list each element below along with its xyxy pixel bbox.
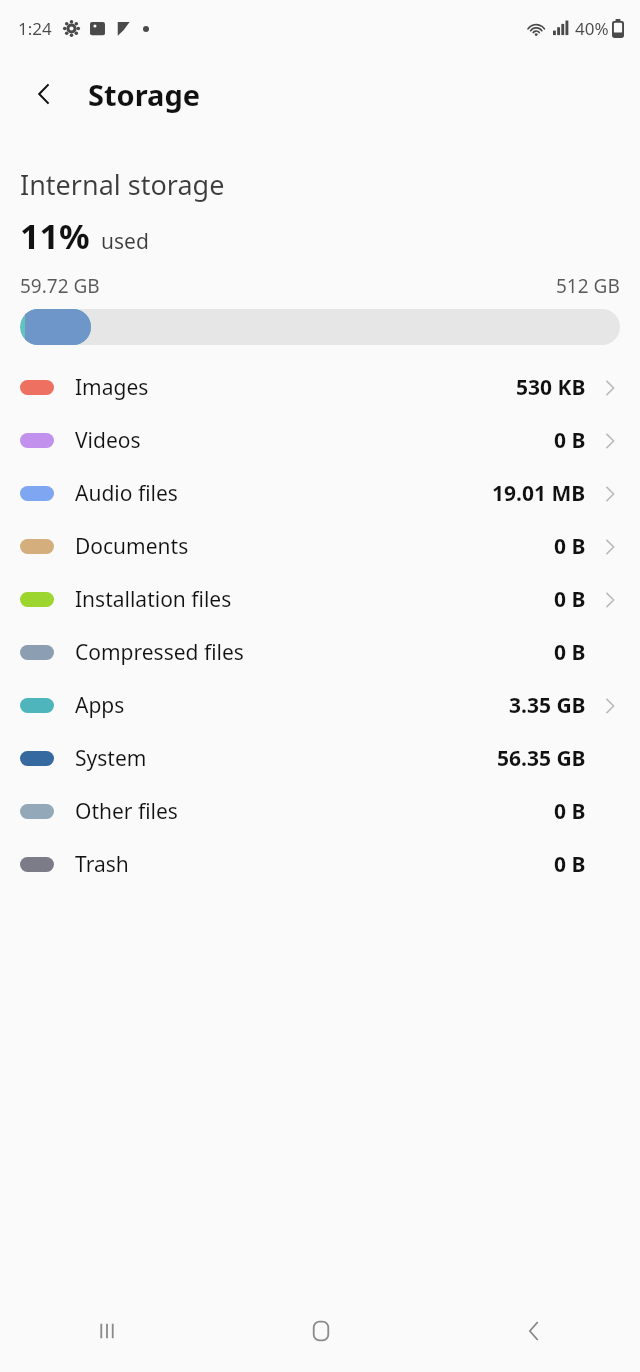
staticText: Other files [75, 797, 178, 826]
staticText: 0 B [554, 585, 586, 614]
button[interactable]: Videos [0, 414, 640, 467]
staticText: Internal storage [20, 166, 225, 203]
staticText: 11% [20, 213, 90, 259]
button[interactable]: Images [0, 361, 640, 414]
staticText: 40% [575, 17, 609, 40]
staticText: Compressed files [75, 638, 244, 667]
button[interactable]: Back [427, 1290, 640, 1372]
staticText: Audio files [75, 479, 178, 508]
staticText: 56.35 GB [497, 744, 586, 773]
staticText: 59.72 GB [20, 273, 100, 299]
staticText: 0 B [554, 797, 586, 826]
button[interactable]: Home [214, 1290, 427, 1372]
staticText: System [75, 744, 147, 773]
staticText: Trash [75, 850, 129, 879]
staticText: 0 B [554, 426, 586, 455]
button[interactable]: Apps [0, 679, 640, 732]
staticText: Apps [75, 691, 125, 720]
button[interactable]: Compressed files [0, 626, 640, 679]
staticText: 530 KB [516, 373, 586, 402]
button[interactable]: Back [20, 70, 68, 118]
button[interactable]: Audio files [0, 467, 640, 520]
staticText: Videos [75, 426, 141, 455]
staticText: used [101, 227, 149, 256]
button[interactable]: Installation files [0, 573, 640, 626]
staticText: Images [75, 373, 149, 402]
staticText: 1:24 [18, 17, 52, 40]
staticText: 512 GB [556, 273, 620, 299]
button[interactable]: Recents [0, 1290, 214, 1372]
button[interactable]: Other files [0, 785, 640, 838]
staticText: 0 B [554, 532, 586, 561]
staticText: 0 B [554, 850, 586, 879]
staticText: Storage [88, 75, 201, 114]
button[interactable]: System [0, 732, 640, 785]
button[interactable]: Trash [0, 838, 640, 891]
staticText: Documents [75, 532, 189, 561]
staticText: 3.35 GB [509, 691, 586, 720]
staticText: Installation files [75, 585, 232, 614]
staticText: 0 B [554, 638, 586, 667]
button[interactable]: Documents [0, 520, 640, 573]
staticText: 19.01 MB [492, 479, 586, 508]
